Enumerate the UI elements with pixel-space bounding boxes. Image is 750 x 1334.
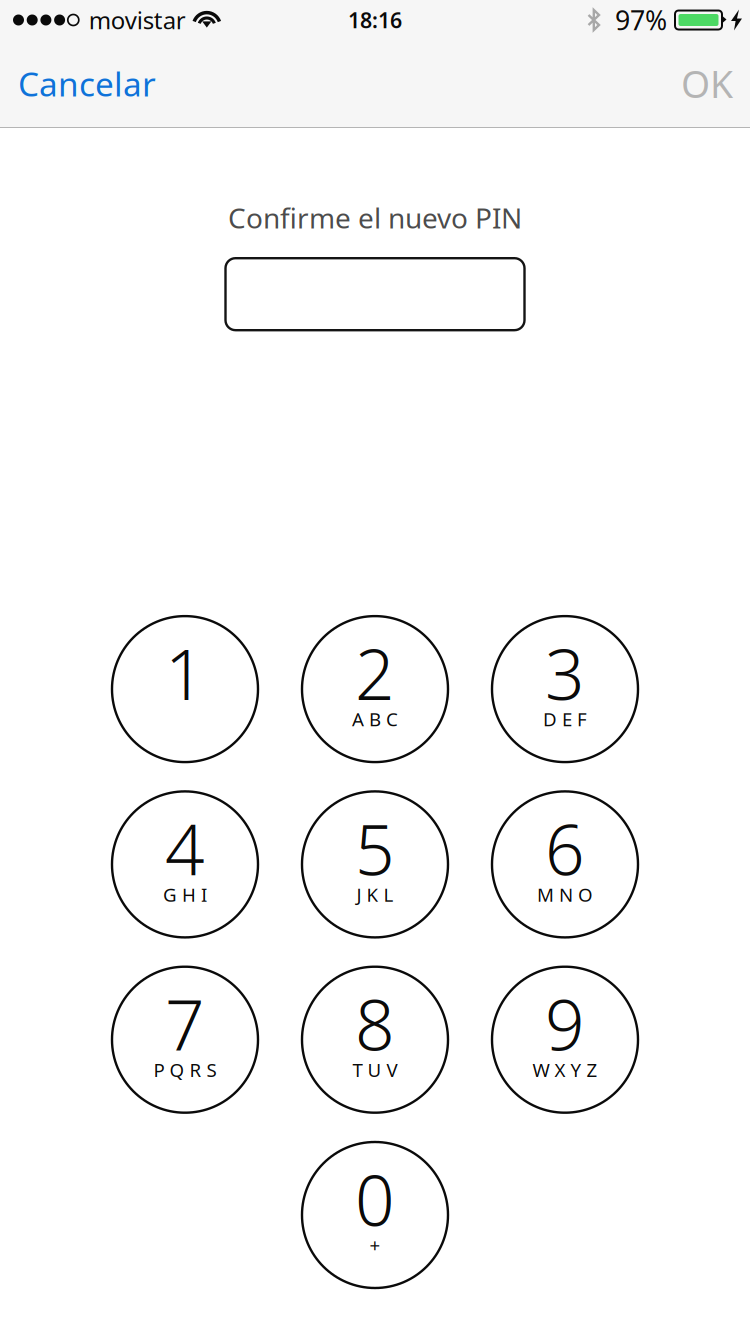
staticText: 4 xyxy=(165,802,205,894)
staticText: 0 xyxy=(355,1153,395,1245)
staticText: + xyxy=(369,1233,380,1257)
staticText: Cancelar xyxy=(18,61,156,106)
staticText: 8 xyxy=(355,978,395,1070)
button[interactable]: 8 xyxy=(280,967,470,1113)
staticText: Confirme el nuevo PIN xyxy=(228,199,522,236)
staticText: 1 xyxy=(165,627,205,719)
staticText: D E F xyxy=(543,707,587,731)
button[interactable]: 4 xyxy=(90,791,280,937)
staticText: 5 xyxy=(355,802,395,894)
button[interactable]: 1 xyxy=(90,616,280,762)
staticText: 7 xyxy=(165,978,205,1070)
button[interactable]: OK xyxy=(664,43,750,124)
button[interactable]: 3 xyxy=(470,616,660,762)
button[interactable]: 0 xyxy=(280,1142,470,1288)
button[interactable]: 2 xyxy=(280,616,470,762)
staticText: 6 xyxy=(545,802,585,894)
staticText: OK xyxy=(681,59,733,108)
button[interactable]: 5 xyxy=(280,791,470,937)
staticText: 9 xyxy=(545,978,585,1070)
staticText: J K L xyxy=(356,882,393,907)
button[interactable]: 9 xyxy=(470,967,660,1113)
staticText: G H I xyxy=(163,882,207,907)
staticText: 3 xyxy=(545,627,585,719)
staticText: T U V xyxy=(352,1057,397,1082)
staticText: 97% xyxy=(615,2,667,38)
staticText: 18:16 xyxy=(348,6,402,34)
staticText: A B C xyxy=(352,707,398,731)
staticText: movistar xyxy=(89,4,186,36)
button[interactable]: 6 xyxy=(470,791,660,937)
button[interactable]: Cancelar xyxy=(0,45,176,122)
staticText: P Q R S xyxy=(153,1057,216,1082)
staticText: W X Y Z xyxy=(532,1057,597,1082)
button[interactable]: 7 xyxy=(90,967,280,1113)
staticText: 2 xyxy=(355,627,395,719)
staticText: M N O xyxy=(537,882,593,907)
